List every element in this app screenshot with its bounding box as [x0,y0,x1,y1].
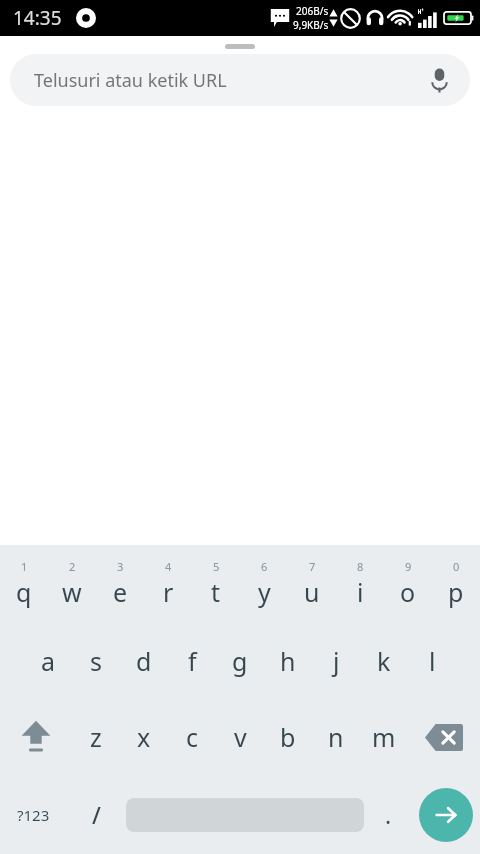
button[interactable]: 0 [432,545,480,623]
staticText: s [90,644,102,678]
button[interactable]: x [120,699,168,775]
staticText: p [448,575,464,609]
button[interactable]: Voice search [420,61,458,99]
button[interactable]: n [312,699,360,775]
staticText: ?123 [17,805,50,825]
staticText: Telusuri atau ketik URL [34,68,227,93]
button[interactable]: d [120,623,168,699]
staticText: t [211,575,221,609]
button[interactable]: Space [126,775,364,854]
staticText: b [280,720,296,754]
button[interactable]: m [360,699,408,775]
staticText: q [16,575,32,609]
staticText: 9,9KB/s [293,18,329,32]
staticText: o [400,575,416,609]
button[interactable]: 3 [96,545,144,623]
staticText: u [304,575,320,609]
staticText: e [113,575,128,609]
button[interactable]: 6 [240,545,288,623]
button[interactable]: j [312,623,360,699]
button[interactable]: h [264,623,312,699]
staticText: g [232,644,248,678]
button[interactable]: ?123 [0,775,67,854]
button[interactable]: f [168,623,216,699]
button[interactable]: . [364,775,412,854]
staticText: 206B/s [296,4,329,18]
button[interactable]: 9 [384,545,432,623]
staticText: 0 [453,559,460,574]
button[interactable]: Telusuri atau ketik URL [10,54,470,106]
staticText: 3 [117,559,124,574]
button[interactable]: 1 [0,545,48,623]
staticText: 5 [213,559,220,574]
button[interactable]: g [216,623,264,699]
button[interactable]: s [72,623,120,699]
button[interactable]: Shift [0,699,72,775]
button[interactable]: 7 [288,545,336,623]
button[interactable]: v [216,699,264,775]
staticText: j [333,644,340,678]
button[interactable]: 2 [48,545,96,623]
button[interactable]: 5 [192,545,240,623]
button[interactable]: b [264,699,312,775]
staticText: r [163,575,174,609]
staticText: 9 [405,559,412,574]
staticText: 6 [261,559,268,574]
button[interactable]: 4 [144,545,192,623]
button[interactable]: Go [412,775,480,854]
staticText: v [234,720,247,754]
staticText: x [137,720,151,754]
button[interactable]: l [408,623,456,699]
staticText: a [41,644,56,678]
button[interactable]: 8 [336,545,384,623]
staticText: m [372,720,396,754]
staticText: h [280,644,296,678]
staticText: y [258,575,271,609]
staticText: i [357,575,364,609]
button[interactable]: k [360,623,408,699]
staticText: 14:35 [13,5,62,31]
staticText: k [377,644,391,678]
button[interactable]: a [24,623,72,699]
staticText: . [385,799,392,830]
staticText: 7 [309,559,316,574]
button[interactable]: c [168,699,216,775]
staticText: f [188,644,197,678]
staticText: l [429,644,436,678]
staticText: n [328,720,344,754]
staticText: 2 [69,559,76,574]
staticText: z [90,720,102,754]
button[interactable]: Backspace [408,699,480,775]
staticText: 1 [21,559,28,574]
button[interactable]: / [67,775,126,854]
staticText: w [62,575,82,609]
staticText: / [92,799,101,830]
staticText: 8 [357,559,364,574]
staticText: d [136,644,152,678]
staticText: 4 [165,559,172,574]
button[interactable]: z [72,699,120,775]
staticText: c [186,720,199,754]
